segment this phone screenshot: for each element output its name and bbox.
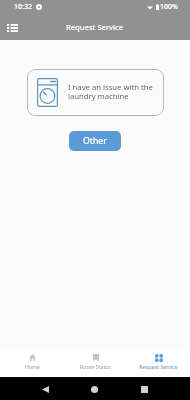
button[interactable]: Home bbox=[84, 379, 104, 399]
button[interactable]: Request Service bbox=[127, 351, 190, 370]
staticText: Request Service bbox=[66, 22, 124, 32]
button[interactable]: Home bbox=[0, 351, 64, 370]
button[interactable]: Back bbox=[35, 379, 55, 399]
button[interactable]: Other bbox=[69, 131, 121, 151]
button[interactable]: Recent apps bbox=[134, 379, 154, 399]
staticText: 10:32 bbox=[14, 2, 32, 12]
staticText: Other bbox=[83, 135, 107, 147]
staticText: Request Service bbox=[139, 363, 178, 370]
staticText: 100% bbox=[160, 2, 178, 12]
button[interactable]: I have an issue with the laundry machine bbox=[27, 69, 164, 116]
staticText: I have an issue with the laundry machine bbox=[68, 82, 154, 102]
staticText: Home bbox=[25, 363, 40, 370]
button[interactable]: Room Status bbox=[64, 351, 127, 370]
staticText: Room Status bbox=[80, 363, 111, 370]
button[interactable]: Open navigation menu bbox=[2, 17, 23, 38]
